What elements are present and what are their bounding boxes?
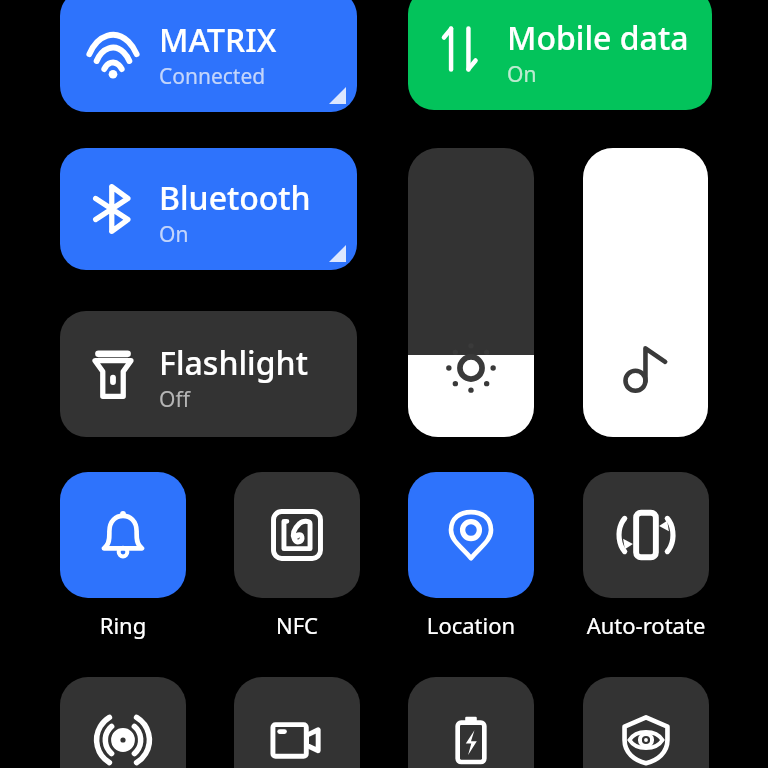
staticText: On <box>159 220 189 249</box>
button[interactable]: Flashlight <box>60 311 357 437</box>
button[interactable]: Privacy <box>583 677 709 768</box>
button[interactable]: Brightness <box>408 148 534 437</box>
staticText: Flashlight <box>159 341 308 385</box>
button[interactable]: Battery saver <box>408 677 534 768</box>
staticText: Bluetooth <box>159 176 311 220</box>
button[interactable]: NFC <box>234 472 360 598</box>
staticText: NFC <box>234 610 360 640</box>
staticText: On <box>507 60 537 89</box>
button[interactable]: Hotspot <box>60 677 186 768</box>
button[interactable]: Mobile data <box>408 0 712 110</box>
staticText: Location <box>408 610 534 640</box>
button[interactable]: Bluetooth <box>60 148 357 270</box>
button[interactable]: Volume <box>583 148 708 437</box>
staticText: Mobile data <box>507 16 689 60</box>
button[interactable]: Auto-rotate <box>583 472 709 598</box>
button[interactable]: MATRIX <box>60 0 357 112</box>
button[interactable]: Ring <box>60 472 186 598</box>
button[interactable]: Location <box>408 472 534 598</box>
staticText: Connected <box>159 62 266 91</box>
staticText: Off <box>159 385 190 414</box>
staticText: Ring <box>60 610 186 640</box>
button[interactable]: Screen record <box>234 677 360 768</box>
staticText: MATRIX <box>159 18 277 62</box>
staticText: Auto-rotate <box>583 610 709 640</box>
